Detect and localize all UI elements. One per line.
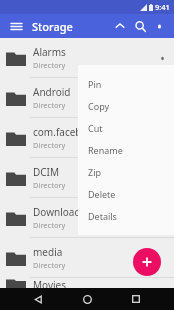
staticText: Directory — [33, 180, 66, 190]
staticText: Alarms — [33, 45, 66, 59]
button[interactable]: Alarms — [0, 38, 174, 77]
button[interactable]: Delete — [78, 183, 174, 205]
staticText: Directory — [33, 140, 66, 150]
staticText: Cut — [88, 122, 103, 134]
staticText: Copy — [88, 100, 110, 112]
staticText: com.facebook.katana — [33, 125, 134, 139]
button[interactable]: More options — [150, 17, 168, 35]
staticText: Download — [33, 205, 81, 219]
staticText: Delete — [88, 188, 116, 200]
button[interactable]: Copy — [78, 95, 174, 117]
button[interactable]: media — [0, 238, 174, 277]
staticText: 9:41 — [155, 2, 170, 12]
button[interactable]: Rename — [78, 139, 174, 161]
staticText: Zip — [88, 166, 102, 178]
button[interactable]: Zip — [78, 161, 174, 183]
staticText: Directory — [33, 60, 66, 70]
staticText: Directory — [33, 100, 66, 110]
button[interactable]: Home — [76, 288, 98, 310]
staticText: Details — [88, 210, 117, 222]
staticText: Storage — [32, 19, 73, 34]
staticText: Pin — [88, 78, 102, 90]
staticText: media — [33, 245, 63, 259]
button[interactable]: Search — [130, 16, 150, 36]
button[interactable]: Menu — [6, 16, 26, 36]
button[interactable]: com.facebook.katana — [0, 118, 174, 157]
staticText: Directory — [33, 220, 66, 230]
button[interactable]: Pin — [78, 73, 174, 95]
staticText: Directory — [33, 260, 66, 270]
staticText: Rename — [88, 144, 123, 156]
staticText: Movies — [33, 278, 67, 288]
staticText: DCIM — [33, 165, 60, 179]
button[interactable]: Back — [27, 288, 49, 310]
button[interactable]: Download — [0, 198, 174, 237]
button[interactable]: DCIM — [0, 158, 174, 197]
button[interactable]: Item options — [154, 50, 170, 66]
button[interactable]: Collapse — [110, 16, 130, 36]
button[interactable]: Add — [133, 248, 161, 276]
button[interactable]: Details — [78, 205, 174, 227]
button[interactable]: Cut — [78, 117, 174, 139]
button[interactable]: Movies — [0, 278, 174, 288]
button[interactable]: Recent apps — [125, 288, 147, 310]
staticText: Android — [33, 85, 71, 99]
button[interactable]: Android — [0, 78, 174, 117]
